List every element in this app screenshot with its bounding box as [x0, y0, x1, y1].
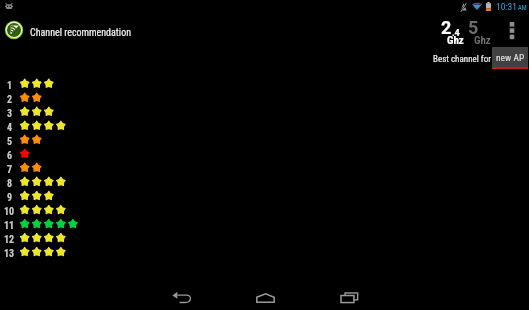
button[interactable]: 5	[0, 133, 529, 147]
button[interactable]: Back	[160, 285, 202, 310]
button[interactable]: 1	[0, 77, 529, 91]
button[interactable]: More options	[503, 16, 521, 46]
staticText: 7	[7, 164, 13, 176]
staticText: 10:31	[496, 1, 517, 12]
button[interactable]: 8	[0, 175, 529, 189]
staticText: 13	[4, 248, 15, 260]
button[interactable]: 11	[0, 217, 529, 231]
staticText: 1	[7, 80, 13, 92]
staticText: 2	[7, 94, 13, 106]
button[interactable]: 9	[0, 189, 529, 203]
button[interactable]: 13	[0, 245, 529, 259]
staticText: 12	[4, 234, 15, 246]
staticText: .4	[452, 28, 460, 39]
button[interactable]: Home	[244, 285, 286, 310]
button[interactable]: 2	[0, 91, 529, 105]
button[interactable]: 7	[0, 161, 529, 175]
button[interactable]: 6	[0, 147, 529, 161]
staticText: 9	[7, 192, 13, 204]
staticText: 5	[7, 136, 13, 148]
staticText: Ghz	[447, 34, 464, 47]
staticText: 3	[7, 108, 13, 120]
staticText: 11	[4, 220, 15, 232]
button[interactable]: Select access point	[492, 47, 528, 69]
button[interactable]: 2	[437, 16, 467, 44]
staticText: AM	[518, 4, 527, 12]
staticText: Channel recommendation	[30, 27, 131, 39]
button[interactable]: Recent apps	[328, 285, 370, 310]
staticText: new AP	[496, 52, 525, 63]
staticText: Best channel for	[433, 54, 491, 65]
staticText: 5	[468, 17, 479, 38]
staticText: 2	[441, 17, 452, 38]
button[interactable]: 12	[0, 231, 529, 245]
staticText: 6	[7, 150, 13, 162]
staticText: Ghz	[474, 34, 491, 47]
button[interactable]: 4	[0, 119, 529, 133]
staticText: 4	[7, 122, 13, 134]
button[interactable]: 5	[465, 16, 493, 44]
button[interactable]: Channel recommendation	[4, 20, 131, 40]
staticText: 8	[7, 178, 13, 190]
button[interactable]: 3	[0, 105, 529, 119]
staticText: 10	[4, 206, 15, 218]
button[interactable]: 10	[0, 203, 529, 217]
